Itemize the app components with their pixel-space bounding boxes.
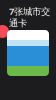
- staticText: 10张城市交通卡已添加: [9, 31, 49, 36]
- staticText: 7张城市交通卡: [9, 5, 50, 29]
